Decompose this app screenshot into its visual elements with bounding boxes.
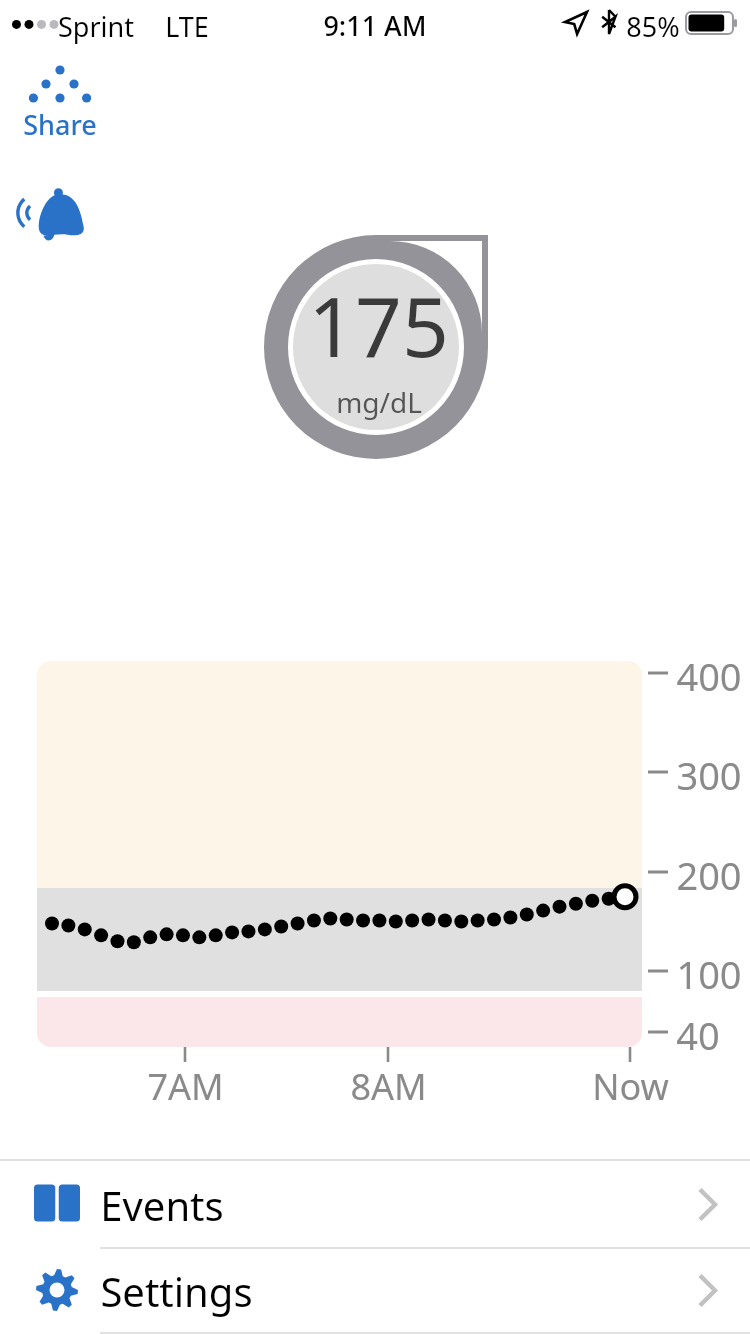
staticText: Settings (100, 1264, 253, 1318)
staticText: 175 (308, 269, 449, 381)
staticText: Share (23, 106, 97, 143)
staticText: 85% (626, 8, 680, 45)
staticText: 200 (676, 849, 742, 901)
button[interactable]: Settings (0, 1248, 750, 1333)
button[interactable]: 175 (256, 227, 500, 471)
staticText: 400 (676, 650, 742, 702)
staticText: Sprint (58, 8, 134, 45)
staticText: 100 (676, 948, 742, 1000)
staticText: Now (592, 1062, 669, 1111)
button[interactable]: Alerts (20, 185, 92, 247)
staticText: LTE (165, 8, 209, 45)
staticText: 300 (676, 749, 742, 801)
button[interactable]: Events (0, 1161, 750, 1248)
staticText: Events (100, 1178, 224, 1232)
staticText: 9:11 AM (323, 7, 427, 44)
button[interactable]: Share (18, 62, 102, 146)
staticText: 8AM (350, 1062, 427, 1111)
staticText: mg/dL (336, 383, 422, 421)
staticText: 7AM (147, 1062, 224, 1111)
staticText: 40 (676, 1009, 720, 1061)
